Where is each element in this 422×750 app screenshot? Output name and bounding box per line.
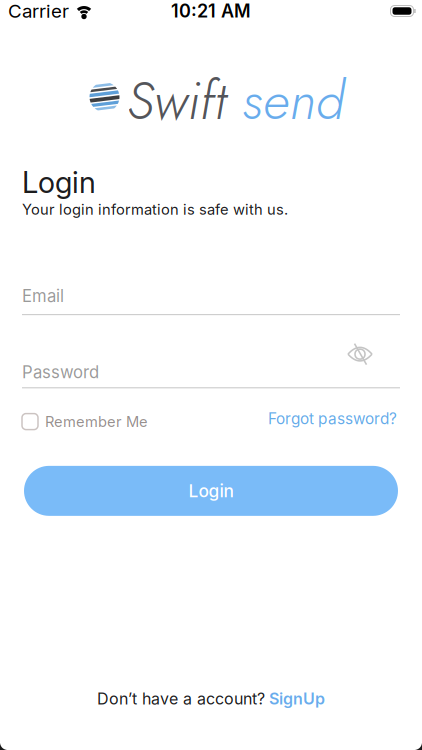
staticText: send xyxy=(241,62,344,139)
button[interactable]: Password xyxy=(22,362,400,388)
staticText: SignUp xyxy=(269,689,325,708)
staticText: Don’t have a account? xyxy=(97,689,265,708)
button[interactable]: Remember Me xyxy=(22,413,148,430)
staticText: Password xyxy=(22,362,99,382)
staticText: Forgot password? xyxy=(268,409,397,428)
staticText: Email xyxy=(22,286,64,306)
staticText: Swift xyxy=(126,62,241,139)
staticText: 10:21 AM xyxy=(171,0,251,22)
button[interactable]: Forgot password? xyxy=(268,409,397,428)
staticText: Carrier xyxy=(8,0,69,22)
button[interactable]: Login xyxy=(24,466,398,516)
staticText: Login xyxy=(22,165,96,200)
staticText: Your login information is safe with us. xyxy=(22,201,288,218)
staticText: Login xyxy=(188,481,233,501)
button[interactable]: Show password xyxy=(347,345,373,363)
button[interactable]: SignUp xyxy=(269,689,325,708)
button[interactable]: Email xyxy=(22,286,400,315)
staticText: Remember Me xyxy=(45,413,148,430)
